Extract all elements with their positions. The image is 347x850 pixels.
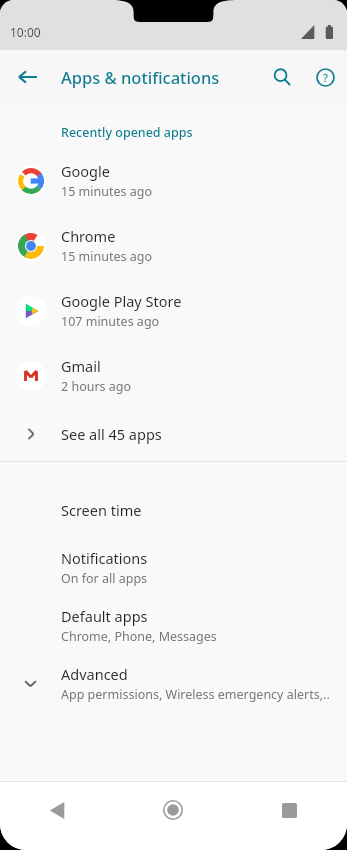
staticText: Notifications <box>61 548 148 568</box>
button[interactable]: Notifications <box>0 538 347 596</box>
button[interactable]: Home <box>115 782 231 850</box>
button[interactable]: Google <box>0 148 347 213</box>
staticText: Chrome, Phone, Messages <box>61 628 217 645</box>
staticText: Recently opened apps <box>61 124 193 141</box>
button[interactable]: Gmail <box>0 343 347 408</box>
staticText: 15 minutes ago <box>61 248 152 265</box>
staticText: Gmail <box>61 356 101 376</box>
staticText: Advanced <box>61 664 128 684</box>
button[interactable]: Back <box>6 55 50 99</box>
staticText: Default apps <box>61 606 148 626</box>
button[interactable]: Recents <box>231 782 347 850</box>
staticText: App permissions, Wireless emergency aler… <box>61 686 330 703</box>
button[interactable]: Back <box>0 782 115 850</box>
button[interactable]: Google Play Store <box>0 278 347 343</box>
staticText: See all 45 apps <box>61 424 162 444</box>
staticText: Apps & notifications <box>61 66 220 88</box>
staticText: Google Play Store <box>61 291 182 311</box>
button[interactable]: Help <box>305 57 345 97</box>
staticText: On for all apps <box>61 570 148 587</box>
staticText: 15 minutes ago <box>61 183 152 200</box>
staticText: Chrome <box>61 226 116 246</box>
button[interactable]: Screen time <box>0 482 347 538</box>
button[interactable]: Advanced <box>0 654 347 712</box>
button[interactable]: See all 45 apps <box>0 408 347 460</box>
staticText: ? <box>323 70 328 85</box>
button[interactable]: Search <box>262 57 302 97</box>
staticText: 2 hours ago <box>61 378 132 395</box>
staticText: Screen time <box>61 500 142 520</box>
button[interactable]: Default apps <box>0 596 347 654</box>
staticText: 10:00 <box>10 24 41 40</box>
staticText: Google <box>61 161 110 181</box>
staticText: 107 minutes ago <box>61 313 160 330</box>
button[interactable]: Chrome <box>0 213 347 278</box>
